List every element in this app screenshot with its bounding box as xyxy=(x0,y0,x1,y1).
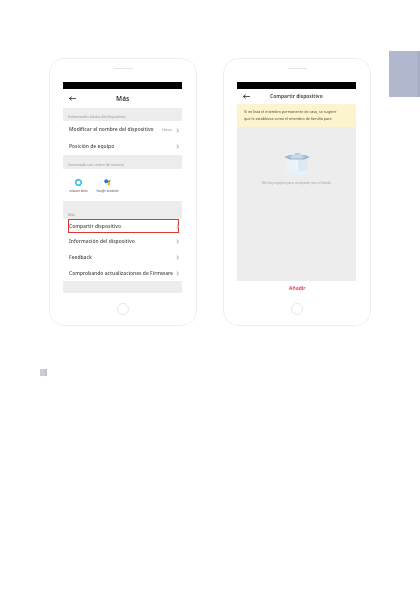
button[interactable]: Back xyxy=(241,91,252,102)
button[interactable]: Modificar el nombre del dispositivo xyxy=(63,121,182,138)
staticText: Posición de equipo xyxy=(69,143,115,150)
button[interactable]: Compartir dispositivo xyxy=(63,219,182,233)
staticText: Feedback xyxy=(69,254,92,261)
staticText: que le establezca como el miembro de fam… xyxy=(244,116,332,121)
button[interactable]: Comprobando actualizaciones de Firmware xyxy=(63,265,182,281)
staticText: Conectado con centro de servicio xyxy=(68,162,124,167)
staticText: Información del dispositivo xyxy=(69,238,135,245)
staticText: Comprobando actualizaciones de Firmware xyxy=(69,270,173,277)
staticText: Si en lista el miembro permanente de cas… xyxy=(244,109,337,114)
button[interactable]: Posición de equipo xyxy=(63,138,182,155)
staticText: Google assistant xyxy=(96,189,119,193)
staticText: Haus xyxy=(162,127,173,133)
staticText: Más xyxy=(68,212,75,217)
button[interactable]: Feedback xyxy=(63,249,182,265)
staticText: Modificar el nombre del dispositivo xyxy=(69,126,154,133)
staticText: Más xyxy=(116,94,130,103)
button[interactable]: Añadir xyxy=(237,281,356,293)
staticText: Compartir dispositivo xyxy=(270,93,323,100)
staticText: amazon alexa xyxy=(69,189,88,193)
button[interactable]: Google assistant xyxy=(95,179,119,193)
staticText: Compartir dispositivo xyxy=(69,223,121,230)
button[interactable]: amazon alexa xyxy=(66,179,90,193)
staticText: Información básica del dispositivo xyxy=(68,114,126,119)
button[interactable]: Información del dispositivo xyxy=(63,233,182,249)
staticText: No hay equipo para compartir por el fond… xyxy=(262,180,332,185)
staticText: Añadir xyxy=(289,285,306,292)
button[interactable]: Back xyxy=(67,93,78,104)
